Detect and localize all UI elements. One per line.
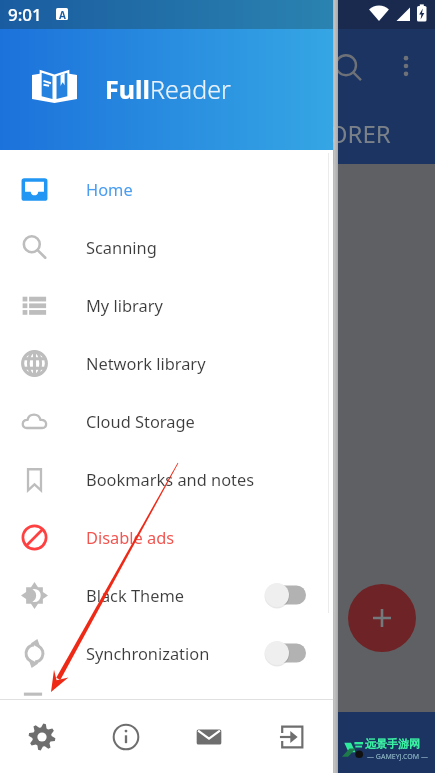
staticText: FULLREADER EXPLORER	[124, 117, 391, 150]
staticText: A	[59, 8, 66, 20]
button[interactable]: My library	[0, 276, 333, 334]
staticText: Synchronization	[86, 642, 210, 664]
staticText: Bookmarks and notes	[86, 468, 255, 490]
button[interactable]: Log in	[250, 700, 333, 773]
button[interactable]: Settings	[0, 700, 84, 773]
button[interactable]: Bookmarks and notes	[0, 450, 333, 508]
staticText: Reader	[150, 72, 231, 106]
button[interactable]: Scanning	[0, 218, 333, 276]
staticText: — GAMEYJ.COM —	[367, 752, 428, 762]
button[interactable]: Search	[330, 50, 370, 90]
staticText: Full	[105, 72, 150, 106]
staticText: Network library	[86, 352, 206, 374]
staticText: Cloud Storage	[86, 410, 195, 432]
staticText: My library	[86, 294, 163, 316]
staticText: 远景手游网	[365, 737, 420, 751]
button[interactable]: Mail	[167, 700, 250, 773]
staticText: Disable ads	[86, 526, 175, 548]
staticText: 9:01	[8, 3, 42, 26]
button[interactable]: Home	[0, 160, 333, 218]
button[interactable]: Add	[348, 584, 416, 652]
button[interactable]: Information	[84, 700, 167, 773]
button[interactable]: Black Theme	[0, 566, 333, 624]
button[interactable]: Network library	[0, 334, 333, 392]
staticText: Scanning	[86, 236, 157, 258]
button[interactable]: Cloud Storage	[0, 392, 333, 450]
staticText: Home	[86, 178, 133, 200]
button[interactable]: Synchronization	[0, 624, 333, 682]
button[interactable]: More options	[392, 52, 420, 80]
staticText: Black Theme	[86, 584, 185, 606]
button[interactable]: Disable ads	[0, 508, 333, 566]
